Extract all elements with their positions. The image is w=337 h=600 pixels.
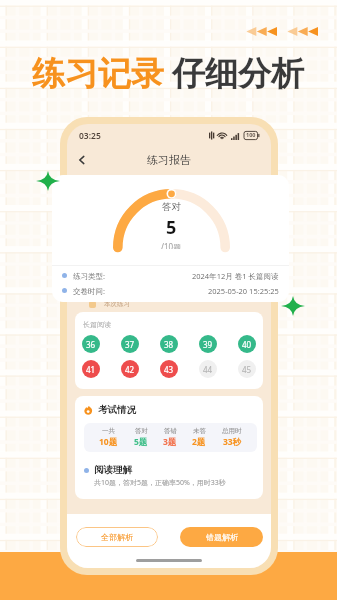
staticText: 2024年12月 卷1 长篇阅读 [192,271,279,281]
staticText: 长篇阅读 [83,320,111,329]
staticText: 考试情况 [98,404,136,416]
staticText: 答对 [135,427,148,435]
staticText: 40 [242,339,252,350]
button[interactable]: 43 [160,360,178,378]
staticText: 44 [203,364,213,375]
staticText: 3题 [163,436,177,448]
staticText: 45 [242,364,252,375]
button[interactable]: Back [73,151,91,169]
staticText: 练习记录 [32,53,164,95]
button[interactable]: 38 [160,335,178,353]
button[interactable]: 36 [82,335,100,353]
staticText: 43 [164,364,174,375]
button[interactable]: 37 [121,335,139,353]
staticText: 03:25 [79,130,101,142]
staticText: 一共 [102,427,115,435]
staticText: 未答 [193,427,206,435]
staticText: 37 [125,339,135,350]
staticText: 全部解析 [101,532,133,542]
button[interactable]: 39 [199,335,217,353]
staticText: 36 [86,339,96,350]
staticText: 10题 [99,436,118,448]
staticText: 本次练习 [104,300,130,308]
staticText: 2题 [192,436,206,448]
staticText: 总用时 [222,427,242,435]
staticText: 100 [246,131,256,138]
button[interactable]: 40 [238,335,256,353]
staticText: 5题 [134,436,148,448]
staticText: 2025-05-20 15:25:25 [208,286,279,296]
button[interactable]: 41 [82,360,100,378]
staticText: 共10题，答对5题，正确率50%，用时33秒 [94,478,226,488]
staticText: /10题 [161,241,182,249]
staticText: 5 [166,215,177,240]
button[interactable]: 44 [199,360,217,378]
button[interactable]: 45 [238,360,256,378]
staticText: 交卷时间: [73,286,106,296]
button[interactable]: 42 [121,360,139,378]
staticText: 仔细分析 [172,53,304,95]
staticText: 练习类型: [73,271,106,281]
staticText: 38 [164,339,174,350]
staticText: 答对 [162,201,181,213]
staticText: 39 [203,339,213,350]
staticText: 33秒 [223,436,242,448]
staticText: 阅读理解 [94,464,132,476]
staticText: 练习报告 [147,153,191,167]
staticText: 答错 [164,427,177,435]
button[interactable]: 错题解析 [180,527,263,547]
staticText: 错题解析 [206,532,238,542]
button[interactable]: 全部解析 [76,527,158,547]
staticText: 42 [125,364,135,375]
staticText: 41 [86,364,96,375]
